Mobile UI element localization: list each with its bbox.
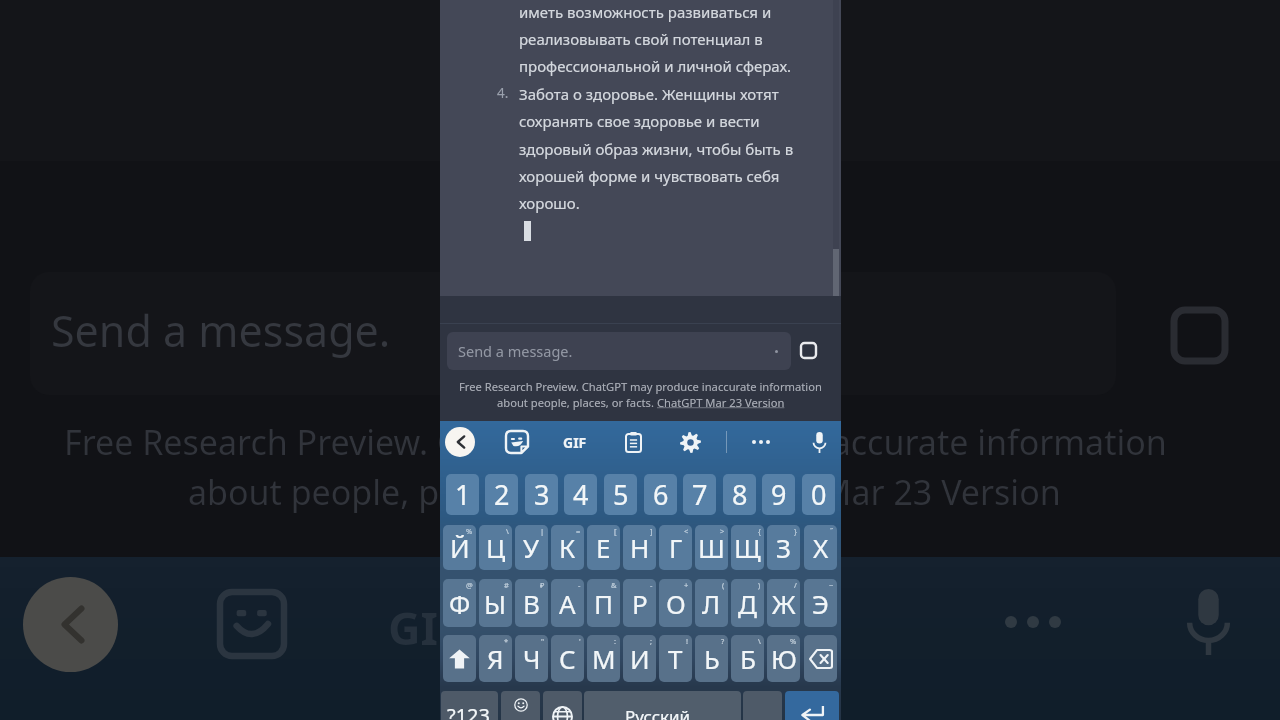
staticText: ~ xyxy=(829,580,834,590)
staticText: 5 xyxy=(613,476,629,513)
staticText: У xyxy=(523,530,540,565)
button[interactable]: Change language xyxy=(543,691,582,720)
staticText: Ц xyxy=(486,530,506,565)
button[interactable]: 0 xyxy=(802,474,835,515)
staticText: ? xyxy=(721,636,725,646)
staticText: И xyxy=(630,641,650,676)
staticText: [ xyxy=(614,526,617,536)
button[interactable]: У xyxy=(515,525,548,570)
staticText: М xyxy=(592,641,616,676)
button[interactable]: Shift xyxy=(443,635,476,682)
button[interactable]: Щ xyxy=(731,525,764,570)
button[interactable]: Emoji xyxy=(501,691,540,720)
button[interactable]: Enter xyxy=(785,691,839,720)
button[interactable]: Send a message. xyxy=(447,332,791,370)
staticText: иметь возможность развиваться и xyxy=(519,2,772,22)
staticText: ; xyxy=(650,636,653,646)
button[interactable]: Ж xyxy=(767,579,800,627)
button[interactable]: С xyxy=(551,635,584,682)
staticText: GIF xyxy=(388,597,463,658)
staticText: - xyxy=(578,580,581,590)
button[interactable]: ?123 xyxy=(441,691,498,720)
button[interactable]: Х xyxy=(804,525,837,570)
button[interactable]: 7 xyxy=(683,474,716,515)
staticText: Free Research Preview. ChatGPT may produ… xyxy=(459,379,822,394)
staticText: Я xyxy=(487,641,504,676)
button[interactable]: В xyxy=(515,579,548,627)
button[interactable]: Г xyxy=(659,525,692,570)
staticText: | xyxy=(540,526,545,536)
button[interactable]: Back xyxy=(445,427,475,457)
button[interactable]: Русский xyxy=(584,691,741,720)
button[interactable]: Я xyxy=(479,635,512,682)
staticText: 7 xyxy=(692,476,708,513)
button[interactable]: Б xyxy=(731,635,764,682)
button[interactable]: Ы xyxy=(479,579,512,627)
button[interactable]: Clipboard xyxy=(618,427,648,457)
staticText: GIF xyxy=(563,433,587,452)
button[interactable]: Stop generating xyxy=(797,339,820,362)
button[interactable]: К xyxy=(551,525,584,570)
staticText: + xyxy=(684,580,689,590)
staticText: Ф xyxy=(449,586,471,621)
button[interactable]: М xyxy=(587,635,620,682)
button[interactable]: 5 xyxy=(604,474,637,515)
staticText: Free Research Preview. ChatGPT may produ… xyxy=(64,419,1167,465)
button[interactable]: Voice input xyxy=(804,427,834,457)
button[interactable]: Ь xyxy=(695,635,728,682)
button[interactable]: GIF xyxy=(558,427,592,457)
staticText: * xyxy=(504,636,509,646)
button[interactable]: 1 xyxy=(446,474,479,515)
staticText: # xyxy=(504,580,509,590)
button[interactable]: Й xyxy=(443,525,476,570)
staticText: С xyxy=(559,641,576,676)
button[interactable]: Т xyxy=(659,635,692,682)
staticText: сохранять свое здоровье и вести xyxy=(519,111,760,131)
button[interactable]: Р xyxy=(623,579,656,627)
staticText: хорошей форме и чувствовать себя xyxy=(519,166,780,186)
button[interactable]: О xyxy=(659,579,692,627)
staticText: Ж xyxy=(772,586,796,621)
staticText: профессиональной и личной сферах. xyxy=(519,56,792,76)
button[interactable]: Ф xyxy=(443,579,476,627)
button[interactable]: Э xyxy=(804,579,837,627)
button[interactable]: П xyxy=(587,579,620,627)
button[interactable]: З xyxy=(767,525,800,570)
button[interactable]: Settings xyxy=(675,427,705,457)
staticText: : xyxy=(614,636,617,646)
button[interactable]: 9 xyxy=(762,474,795,515)
button[interactable]: Н xyxy=(623,525,656,570)
staticText: } xyxy=(794,526,797,536)
button[interactable]: Е xyxy=(587,525,620,570)
button[interactable]: Ю xyxy=(767,635,800,682)
staticText: about people, places, or facts. ChatGPT … xyxy=(188,469,1061,515)
button[interactable]: 3 xyxy=(525,474,558,515)
staticText: Э xyxy=(812,586,829,621)
button[interactable]: 6 xyxy=(644,474,677,515)
staticText: Ш xyxy=(698,530,725,565)
button[interactable]: ChatGPT Mar 23 Version xyxy=(657,395,785,410)
button[interactable]: Stickers xyxy=(502,427,532,457)
button[interactable]: Л xyxy=(695,579,728,627)
staticText: Ч xyxy=(523,641,541,676)
staticText: З xyxy=(776,530,792,565)
staticText: Русский xyxy=(625,705,691,720)
button[interactable]: 8 xyxy=(723,474,756,515)
staticText: & xyxy=(611,580,617,590)
button[interactable]: А xyxy=(551,579,584,627)
staticText: Ь xyxy=(704,641,720,676)
button[interactable]: Backspace xyxy=(804,635,837,682)
button[interactable]: More options xyxy=(746,427,776,457)
button[interactable]: 2 xyxy=(485,474,518,515)
staticText: 3 xyxy=(534,476,550,513)
button[interactable]: И xyxy=(623,635,656,682)
button[interactable]: Ц xyxy=(479,525,512,570)
button[interactable]: Ш xyxy=(695,525,728,570)
staticText: " xyxy=(541,636,545,646)
button[interactable]: 4 xyxy=(564,474,597,515)
staticText: здоровый образ жизни, чтобы быть в xyxy=(519,139,794,159)
button[interactable]: Д xyxy=(731,579,764,627)
staticText: Забота о здоровье. Женщины хотят xyxy=(519,84,779,104)
button[interactable]: Ч xyxy=(515,635,548,682)
